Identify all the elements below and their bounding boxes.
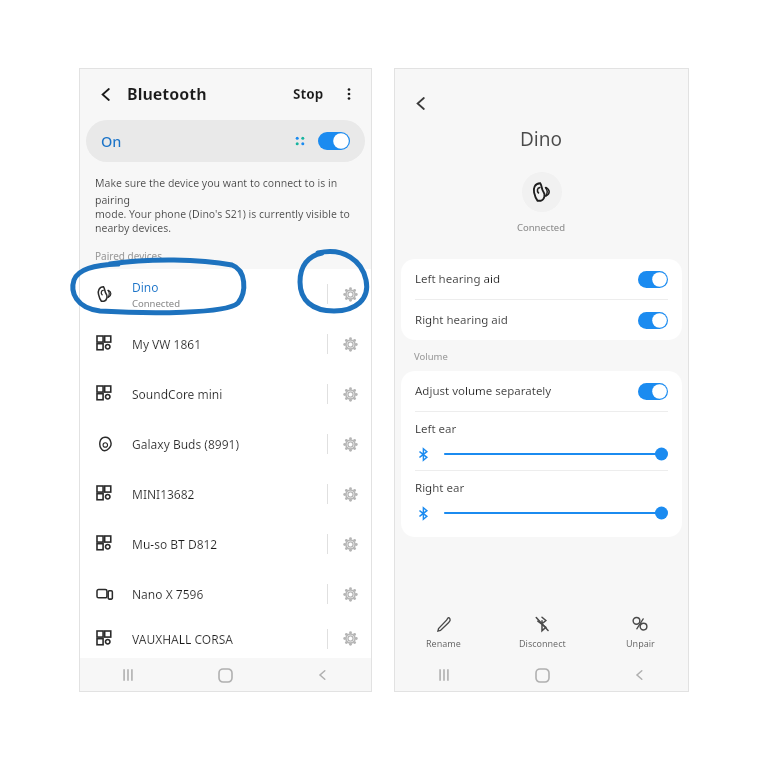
staticText: Nano X 7596 <box>132 586 204 602</box>
staticText: Mu-so BT D812 <box>132 536 218 552</box>
staticText: Left hearing aid <box>415 271 501 287</box>
staticText: Dino <box>520 126 563 152</box>
button[interactable]: Right ear volume slider <box>445 502 668 524</box>
staticText: Dino <box>132 279 159 295</box>
button[interactable]: Galaxy Buds (8991) <box>79 419 372 469</box>
staticText: Volume <box>414 350 448 363</box>
staticText: Unpair <box>626 637 655 649</box>
button[interactable]: Adjust volume separately <box>401 371 682 411</box>
button[interactable]: Back <box>408 90 434 116</box>
button[interactable]: Unpair <box>591 606 689 658</box>
staticText: Right ear <box>415 480 465 496</box>
button[interactable]: VAUXHALL CORSA <box>79 619 372 658</box>
button[interactable]: Settings for Nano X 7596 <box>328 569 372 619</box>
button[interactable]: On <box>86 120 365 162</box>
button[interactable]: Settings for Mu-so BT D812 <box>328 519 372 569</box>
button[interactable]: Rename <box>394 606 493 658</box>
button[interactable]: Recents <box>79 658 176 692</box>
button[interactable]: Settings for Galaxy Buds (8991) <box>328 419 372 469</box>
button[interactable]: Toggle on <box>638 271 668 288</box>
staticText: VAUXHALL CORSA <box>132 631 233 647</box>
button[interactable]: Back <box>274 658 372 692</box>
button[interactable]: Recents <box>394 658 493 692</box>
button[interactable]: Dino <box>79 269 372 319</box>
button[interactable]: MINI13682 <box>79 469 372 519</box>
button[interactable]: Left ear volume slider <box>445 443 668 465</box>
staticText: My VW 1861 <box>132 336 202 352</box>
staticText: Stop <box>293 85 324 103</box>
staticText: mode. Your phone (Dino's S21) is current… <box>95 207 350 221</box>
button[interactable]: Nano X 7596 <box>79 569 372 619</box>
button[interactable]: SoundCore mini <box>79 369 372 419</box>
button[interactable]: Back <box>93 81 119 107</box>
button[interactable]: Settings for SoundCore mini <box>328 369 372 419</box>
staticText: MINI13682 <box>132 486 195 502</box>
staticText: Paired devices <box>95 249 163 263</box>
staticText: Galaxy Buds (8991) <box>132 436 240 452</box>
button[interactable]: Home <box>493 658 591 692</box>
button[interactable]: Toggle on <box>318 132 350 150</box>
staticText: Make sure the device you want to connect… <box>95 176 356 207</box>
button[interactable]: Disconnect <box>493 606 591 658</box>
button[interactable]: Mu-so BT D812 <box>79 519 372 569</box>
button[interactable]: More options <box>338 83 360 105</box>
staticText: Right hearing aid <box>415 312 508 328</box>
staticText: Disconnect <box>519 637 566 649</box>
button[interactable]: Settings for Dino <box>328 269 372 319</box>
staticText: Connected <box>517 221 566 234</box>
staticText: Left ear <box>415 421 457 437</box>
button[interactable]: Toggle on <box>638 383 668 400</box>
staticText: Rename <box>426 637 461 649</box>
button[interactable]: Back <box>591 658 689 692</box>
button[interactable]: Stop <box>289 81 328 107</box>
button[interactable]: Right hearing aid <box>401 300 682 340</box>
button[interactable]: My VW 1861 <box>79 319 372 369</box>
button[interactable]: Home <box>176 658 274 692</box>
button[interactable]: Settings for My VW 1861 <box>328 319 372 369</box>
staticText: nearby devices. <box>95 221 171 235</box>
staticText: Connected <box>132 297 181 310</box>
staticText: Bluetooth <box>127 83 207 105</box>
button[interactable]: Settings for VAUXHALL CORSA <box>328 619 372 658</box>
button[interactable]: Toggle on <box>638 312 668 329</box>
staticText: Adjust volume separately <box>415 383 552 399</box>
button[interactable]: Left hearing aid <box>401 259 682 299</box>
button[interactable]: Settings for MINI13682 <box>328 469 372 519</box>
staticText: On <box>101 131 122 151</box>
staticText: SoundCore mini <box>132 386 223 402</box>
